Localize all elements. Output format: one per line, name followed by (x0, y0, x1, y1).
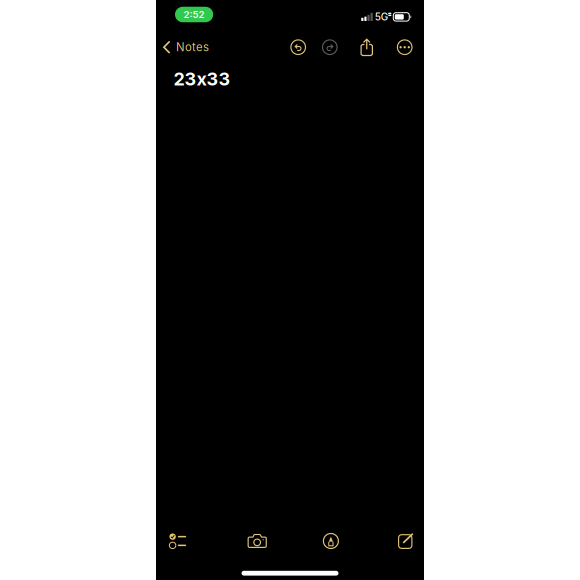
button[interactable]: Markup (311, 528, 351, 554)
staticText: 2:52 (184, 9, 205, 20)
button[interactable]: Notes (163, 35, 213, 59)
button[interactable]: Undo (291, 40, 305, 54)
staticText: Notes (176, 40, 209, 54)
button[interactable]: More (397, 40, 412, 54)
staticText: 23x33 (173, 68, 230, 90)
button[interactable]: Checklist (158, 528, 198, 554)
button[interactable]: Redo (322, 40, 337, 54)
button[interactable]: New note (386, 528, 426, 554)
staticText: 5G (375, 11, 388, 23)
button[interactable]: Camera (237, 528, 277, 554)
button[interactable]: Share (360, 38, 373, 56)
